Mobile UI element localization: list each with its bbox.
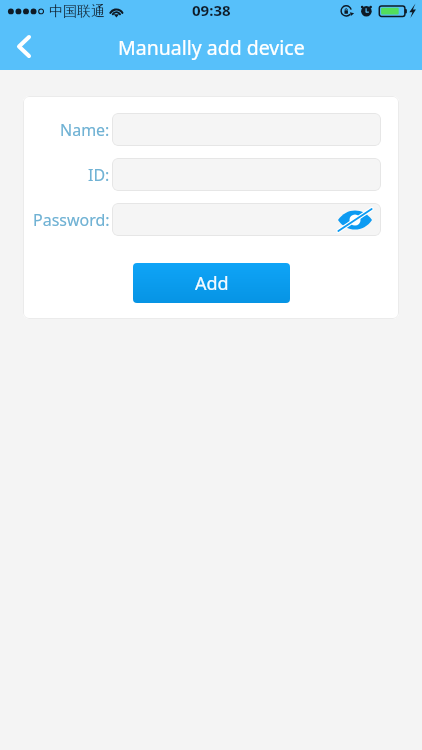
- staticText: 中国联通: [49, 3, 105, 21]
- staticText: Add: [195, 271, 229, 296]
- button[interactable]: [112, 113, 381, 146]
- staticText: ID:: [88, 164, 110, 186]
- staticText: Manually add device: [118, 34, 305, 61]
- button[interactable]: Back: [1, 23, 47, 69]
- staticText: Name:: [60, 119, 110, 141]
- button[interactable]: Add: [133, 263, 290, 303]
- button[interactable]: [112, 158, 381, 191]
- button[interactable]: Show password: [112, 203, 381, 236]
- staticText: Password:: [33, 209, 110, 231]
- staticText: 09:38: [192, 0, 231, 20]
- button[interactable]: Show password: [338, 208, 372, 232]
